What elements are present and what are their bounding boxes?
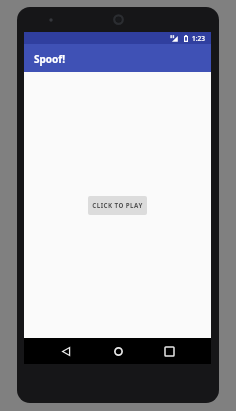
button[interactable]: CLICK TO PLAY [88, 196, 147, 215]
button[interactable]: Spoof! [24, 44, 211, 72]
button[interactable]: Home [108, 341, 128, 361]
button[interactable]: Back [56, 341, 76, 361]
staticText: Spoof! [34, 52, 66, 66]
staticText: CLICK TO PLAY [92, 201, 143, 209]
button[interactable]: Recent apps [159, 341, 179, 361]
staticText: 1:23 [192, 34, 205, 43]
